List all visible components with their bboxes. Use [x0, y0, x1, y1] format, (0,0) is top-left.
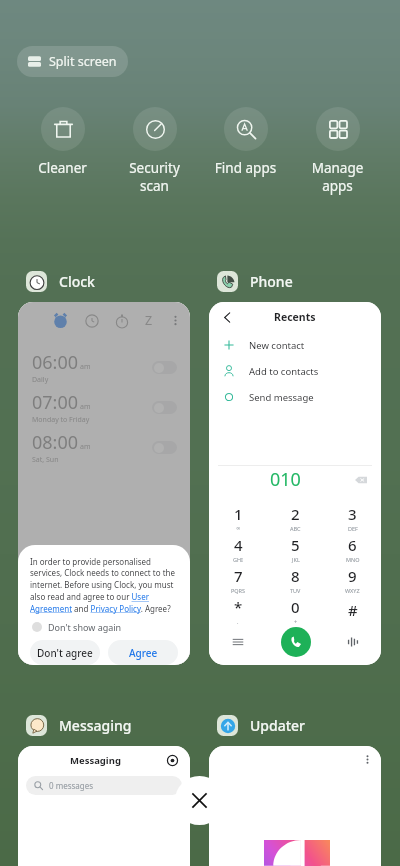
button[interactable]: 07:00: [32, 389, 177, 425]
button[interactable]: Cleaner: [17, 107, 108, 177]
staticText: 0: [291, 597, 300, 617]
staticText: *: [234, 597, 243, 617]
button[interactable]: Agree: [108, 640, 178, 665]
button[interactable]: 9: [324, 564, 381, 595]
button[interactable]: Don't agree: [30, 640, 100, 665]
staticText: 9: [348, 566, 357, 586]
staticText: JKL: [292, 556, 300, 563]
staticText: Monday to Friday: [32, 415, 90, 425]
staticText: #: [348, 600, 358, 620]
button[interactable]: Messaging: [26, 711, 132, 739]
staticText: Updater: [250, 716, 306, 735]
button[interactable]: Don't show again: [30, 619, 122, 634]
staticText: DEF: [348, 525, 358, 532]
button[interactable]: 4: [209, 533, 267, 564]
staticText: 07:00: [32, 390, 79, 415]
button[interactable]: Security scan: [109, 107, 200, 195]
staticText: Clock: [59, 272, 95, 291]
staticText: In order to provide personalised service…: [30, 556, 178, 614]
button[interactable]: Backspace: [352, 471, 370, 489]
staticText: Daily: [32, 375, 49, 385]
button[interactable]: Voicemail: [324, 626, 381, 658]
button[interactable]: 1: [209, 502, 267, 533]
staticText: TUV: [290, 587, 301, 594]
button[interactable]: 5: [267, 533, 324, 564]
staticText: Phone: [250, 272, 293, 291]
button[interactable]: Settings: [164, 752, 180, 768]
staticText: .: [237, 618, 239, 625]
staticText: Manage apps: [292, 159, 383, 195]
staticText: New contact: [249, 339, 305, 352]
button[interactable]: 7: [209, 564, 267, 595]
staticText: 6: [348, 535, 357, 555]
staticText: am: [80, 402, 91, 412]
staticText: 010: [270, 467, 301, 492]
staticText: Cleaner: [17, 159, 108, 177]
button[interactable]: New contact: [223, 332, 381, 358]
staticText: 5: [291, 535, 300, 555]
button[interactable]: 08:00: [32, 429, 177, 465]
button[interactable]: Add to contacts: [223, 358, 381, 384]
staticText: Don't agree: [37, 646, 93, 660]
staticText: +: [294, 618, 298, 625]
button[interactable]: Updater: [217, 711, 306, 739]
staticText: ABC: [290, 525, 301, 532]
button[interactable]: *: [209, 595, 267, 626]
button[interactable]: 2: [267, 502, 324, 533]
button[interactable]: 6: [324, 533, 381, 564]
staticText: 06:00: [32, 350, 79, 375]
staticText: 7: [234, 566, 243, 586]
staticText: Add to contacts: [249, 365, 319, 378]
staticText: Don't show again: [48, 621, 122, 633]
staticText: 4: [234, 535, 243, 555]
staticText: ∞: [236, 525, 241, 531]
button[interactable]: Manage apps: [292, 107, 383, 195]
staticText: am: [80, 442, 91, 452]
button[interactable]: Close all: [175, 776, 224, 825]
button[interactable]: Call: [281, 627, 311, 657]
staticText: MNO: [346, 556, 360, 563]
button[interactable]: Back: [218, 308, 236, 326]
staticText: 3: [348, 504, 357, 524]
staticText: Find apps: [200, 159, 291, 177]
button[interactable]: #: [324, 595, 381, 626]
button[interactable]: Send message: [223, 384, 381, 410]
staticText: 2: [291, 504, 300, 524]
staticText: Split screen: [49, 53, 117, 70]
button[interactable]: Phone: [217, 267, 293, 295]
staticText: PQRS: [231, 587, 246, 594]
staticText: WXYZ: [345, 587, 360, 594]
button[interactable]: More: [209, 626, 267, 658]
staticText: Sat, Sun: [32, 455, 59, 465]
button[interactable]: Split screen: [17, 46, 128, 77]
staticText: Agree: [129, 646, 158, 660]
staticText: Security scan: [109, 159, 200, 195]
button[interactable]: Clock: [26, 267, 95, 295]
staticText: 8: [291, 566, 300, 586]
button[interactable]: 8: [267, 564, 324, 595]
staticText: Z: [145, 312, 153, 329]
button[interactable]: 3: [324, 502, 381, 533]
button[interactable]: More options: [360, 752, 374, 766]
staticText: GHI: [233, 556, 243, 563]
staticText: Messaging: [70, 754, 121, 767]
staticText: am: [80, 362, 91, 372]
button[interactable]: 0: [267, 595, 324, 626]
staticText: 1: [234, 504, 243, 524]
staticText: 08:00: [32, 430, 79, 455]
staticText: Messaging: [59, 716, 132, 735]
staticText: Recents: [274, 310, 316, 324]
button[interactable]: 06:00: [32, 349, 177, 385]
button[interactable]: Find apps: [200, 107, 291, 177]
staticText: 0 messages: [49, 780, 94, 791]
button[interactable]: 0 messages: [26, 776, 182, 795]
staticText: Send message: [249, 391, 314, 404]
